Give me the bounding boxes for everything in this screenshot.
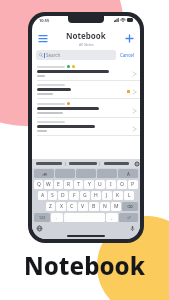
button[interactable]: M [111, 202, 121, 211]
staticText: H [94, 192, 98, 199]
button[interactable]: W [44, 180, 53, 189]
staticText: T [77, 181, 80, 188]
staticText: A [41, 192, 45, 199]
button[interactable]: H [91, 191, 101, 200]
staticText: N [103, 203, 107, 210]
staticText: E [57, 181, 60, 188]
button[interactable]: V [78, 202, 88, 211]
staticText: 10:55 [39, 18, 50, 23]
button[interactable] [32, 81, 140, 98]
staticText: S [51, 192, 54, 199]
button[interactable]: Z [46, 202, 55, 211]
button[interactable]: A [38, 191, 47, 200]
staticText: Notebook [66, 30, 106, 41]
staticText: J [106, 192, 108, 199]
staticText: , [111, 215, 113, 220]
button[interactable]: Keyboard settings [133, 160, 140, 167]
staticText: 123 [39, 215, 46, 220]
staticText: Q [37, 181, 41, 188]
staticText: C [70, 203, 74, 210]
button[interactable]: G [80, 191, 90, 200]
button[interactable]: K [113, 191, 123, 200]
staticText: K [116, 192, 120, 199]
button[interactable]: F [69, 191, 79, 200]
staticText: Notebook [24, 249, 145, 282]
staticText: D [61, 192, 65, 199]
button[interactable]: அ [34, 169, 54, 178]
button[interactable]: Change language [36, 225, 43, 232]
button[interactable]: Menu [36, 31, 50, 45]
button[interactable]: , [106, 213, 118, 222]
staticText: . [56, 215, 58, 220]
staticText: V [81, 203, 85, 210]
button[interactable]: B [89, 202, 99, 211]
staticText: B [92, 203, 96, 210]
staticText: U [98, 181, 102, 188]
button[interactable]: D [58, 191, 68, 200]
staticText: அ [42, 171, 47, 176]
button[interactable] [32, 99, 140, 117]
button[interactable] [32, 118, 140, 135]
staticText: A [127, 171, 130, 177]
staticText: Z [49, 203, 52, 210]
staticText: I [110, 181, 112, 188]
button[interactable]: Search [36, 50, 116, 60]
staticText: F [73, 192, 76, 199]
button[interactable]: P [128, 180, 138, 189]
staticText: M [114, 203, 119, 210]
button[interactable]: Q [34, 180, 43, 189]
staticText: X [60, 203, 63, 210]
button[interactable] [32, 159, 65, 168]
button[interactable]: Dictate [129, 225, 136, 232]
button[interactable]: T [74, 180, 83, 189]
button[interactable]: N [100, 202, 110, 211]
button[interactable]: New note [122, 31, 136, 45]
button[interactable]: X [56, 202, 66, 211]
button[interactable]: S [48, 191, 57, 200]
staticText: P [131, 181, 135, 188]
button[interactable]: E [54, 180, 63, 189]
staticText: W [46, 181, 51, 188]
staticText: Y [88, 181, 91, 188]
button[interactable]: O [117, 180, 127, 189]
button[interactable] [32, 62, 140, 80]
button[interactable]: A [118, 169, 138, 178]
staticText: ⌫ [127, 204, 133, 209]
button[interactable]: J [102, 191, 112, 200]
button[interactable]: R [64, 180, 73, 189]
button[interactable] [100, 159, 133, 168]
staticText: G [83, 192, 87, 199]
staticText: ⏎ [127, 215, 131, 220]
button[interactable]: . [51, 213, 63, 222]
staticText: L [128, 192, 131, 199]
staticText: Cancel [120, 52, 135, 58]
button[interactable]: L [124, 191, 134, 200]
button[interactable]: ⌫ [122, 202, 138, 211]
button[interactable]: ⏎ [119, 213, 138, 222]
button[interactable]: C [67, 202, 77, 211]
staticText: All Notes [79, 42, 94, 47]
staticText: Search [46, 52, 61, 58]
button[interactable]: Cancel [119, 51, 136, 59]
staticText: R [67, 181, 71, 188]
button[interactable]: Y [84, 180, 94, 189]
button[interactable] [66, 159, 99, 168]
button[interactable]: U [95, 180, 105, 189]
button[interactable]: 123 [34, 213, 50, 222]
staticText: O [120, 181, 124, 188]
button[interactable]: I [106, 180, 116, 189]
